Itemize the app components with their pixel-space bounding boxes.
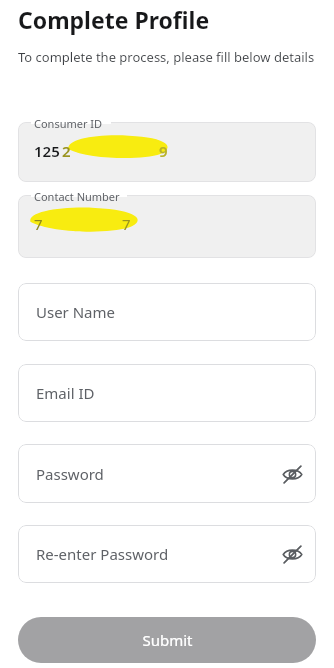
staticText: 9 <box>159 141 168 161</box>
staticText: 7 <box>34 214 43 234</box>
staticText: Consumer ID <box>34 116 103 131</box>
button[interactable]: Password <box>18 444 316 503</box>
button[interactable]: Re-enter Password <box>18 525 316 583</box>
staticText: Complete Profile <box>18 4 210 35</box>
staticText: 2 <box>62 141 71 161</box>
staticText: 125 <box>34 141 60 161</box>
staticText: Password <box>36 464 104 484</box>
staticText: Email ID <box>36 383 95 403</box>
staticText: Re-enter Password <box>36 544 169 564</box>
staticText: To complete the process, please fill bel… <box>18 48 315 66</box>
button[interactable]: Show password <box>277 539 307 569</box>
staticText: Contact Number <box>34 189 120 204</box>
button[interactable]: Email ID <box>18 364 316 422</box>
button[interactable]: Show password <box>277 459 307 489</box>
button[interactable]: Submit <box>18 617 316 663</box>
button[interactable]: Consumer ID <box>18 122 316 182</box>
button[interactable]: User Name <box>18 283 316 341</box>
staticText: Submit <box>142 630 193 650</box>
staticText: User Name <box>36 302 116 322</box>
staticText: 7 <box>122 214 131 234</box>
button[interactable]: Contact Number <box>18 195 316 258</box>
